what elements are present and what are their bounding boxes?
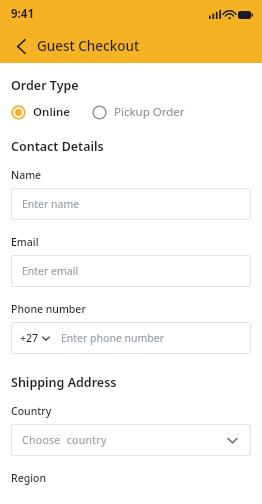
staticText: Shipping Address <box>11 374 117 391</box>
staticText: Phone number <box>11 302 86 316</box>
staticText: Choose country <box>22 433 227 447</box>
button[interactable]: Enter phone number <box>61 322 251 354</box>
staticText: Guest Checkout <box>37 37 140 55</box>
button[interactable]: Enter name <box>11 188 251 220</box>
staticText: +27 <box>20 331 39 345</box>
button[interactable]: Pickup Order <box>92 104 185 120</box>
staticText: Enter name <box>22 197 80 211</box>
staticText: Name <box>11 168 42 182</box>
staticText: 9:41 <box>11 6 34 22</box>
staticText: Enter email <box>22 264 79 278</box>
staticText: Region <box>11 471 47 485</box>
staticText: Online <box>33 104 70 120</box>
staticText: Email <box>11 235 39 249</box>
staticText: Pickup Order <box>114 104 185 120</box>
button[interactable]: Online <box>11 104 70 120</box>
staticText: Contact Details <box>11 138 104 155</box>
button[interactable]: +27 <box>20 331 50 345</box>
button[interactable]: Choose country <box>11 424 251 456</box>
staticText: Enter phone number <box>61 331 165 345</box>
staticText: Order Type <box>11 77 79 94</box>
button[interactable]: Back <box>8 33 34 59</box>
button[interactable]: Enter email <box>11 255 251 287</box>
staticText: Country <box>11 404 52 418</box>
